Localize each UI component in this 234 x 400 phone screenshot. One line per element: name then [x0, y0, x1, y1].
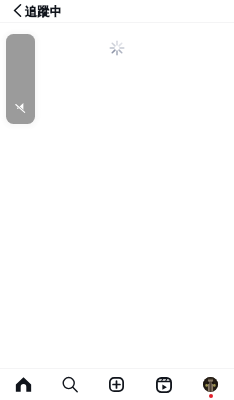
- button[interactable]: Create: [93, 369, 140, 400]
- button[interactable]: Profile: [187, 369, 234, 400]
- staticText: 追蹤中: [25, 4, 62, 19]
- button[interactable]: [6, 34, 35, 124]
- button[interactable]: Home: [0, 369, 46, 400]
- button[interactable]: Back: [5, 0, 29, 23]
- button[interactable]: Search: [46, 369, 93, 400]
- button[interactable]: Reels: [140, 369, 187, 400]
